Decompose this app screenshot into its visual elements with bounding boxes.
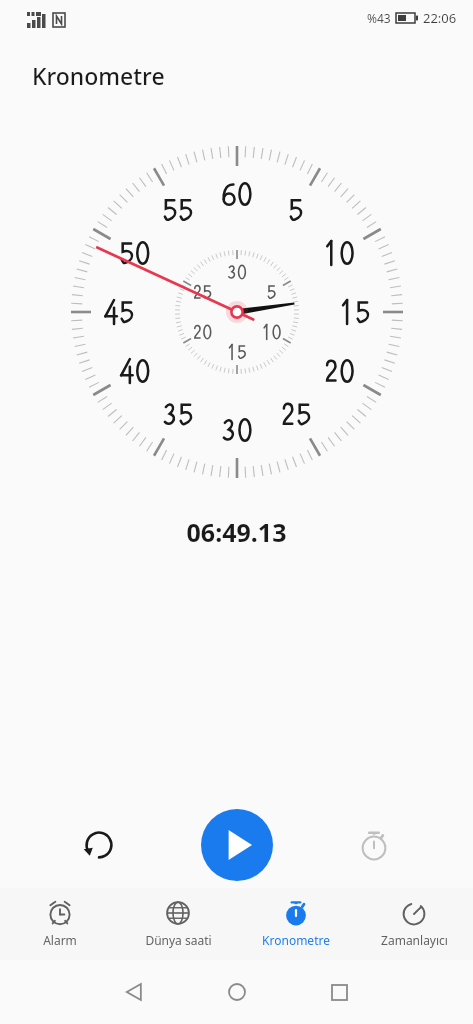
staticText: %43 — [367, 10, 391, 26]
button[interactable]: Tur — [341, 812, 407, 878]
staticText: 22:06 — [423, 9, 457, 27]
button[interactable]: Dünya saati — [119, 888, 237, 960]
button[interactable]: Alarm — [0, 888, 119, 960]
button[interactable]: Ana ekran — [213, 968, 261, 1016]
button[interactable]: Başlat — [201, 809, 273, 881]
staticText: Kronometre — [32, 60, 165, 91]
staticText: Alarm — [43, 932, 77, 948]
staticText: Zamanlayıcı — [381, 932, 448, 948]
staticText: Dünya saati — [145, 932, 212, 948]
button[interactable]: Geri — [110, 968, 158, 1016]
button[interactable]: Kronometre — [237, 888, 355, 960]
button[interactable]: Sıfırla — [66, 812, 132, 878]
staticText: 06:49.13 — [0, 515, 473, 549]
button[interactable]: Son uygulamalar — [315, 968, 363, 1016]
staticText: Kronometre — [262, 932, 330, 948]
button[interactable]: Zamanlayıcı — [355, 888, 473, 960]
